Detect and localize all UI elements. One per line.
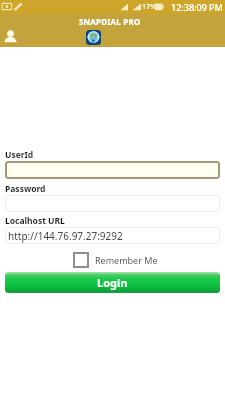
button[interactable]: Login xyxy=(5,272,220,293)
button[interactable]: http://144.76.97.27:9292 xyxy=(5,227,220,244)
staticText: Localhost URL xyxy=(5,215,65,227)
button[interactable] xyxy=(5,195,220,212)
staticText: http://144.76.97.27:9292 xyxy=(8,229,123,243)
staticText: Login xyxy=(97,275,128,290)
staticText: Password xyxy=(5,183,46,195)
staticText: UserId xyxy=(5,149,34,161)
staticText: 17% xyxy=(142,2,157,12)
button[interactable] xyxy=(5,161,220,179)
button[interactable]: Account xyxy=(0,25,20,45)
staticText: SNAPDIAL PRO xyxy=(79,16,141,27)
staticText: Remember Me xyxy=(95,254,158,266)
button[interactable]: Remember Me xyxy=(73,252,158,268)
staticText: 12:38:09 PM xyxy=(171,1,223,13)
